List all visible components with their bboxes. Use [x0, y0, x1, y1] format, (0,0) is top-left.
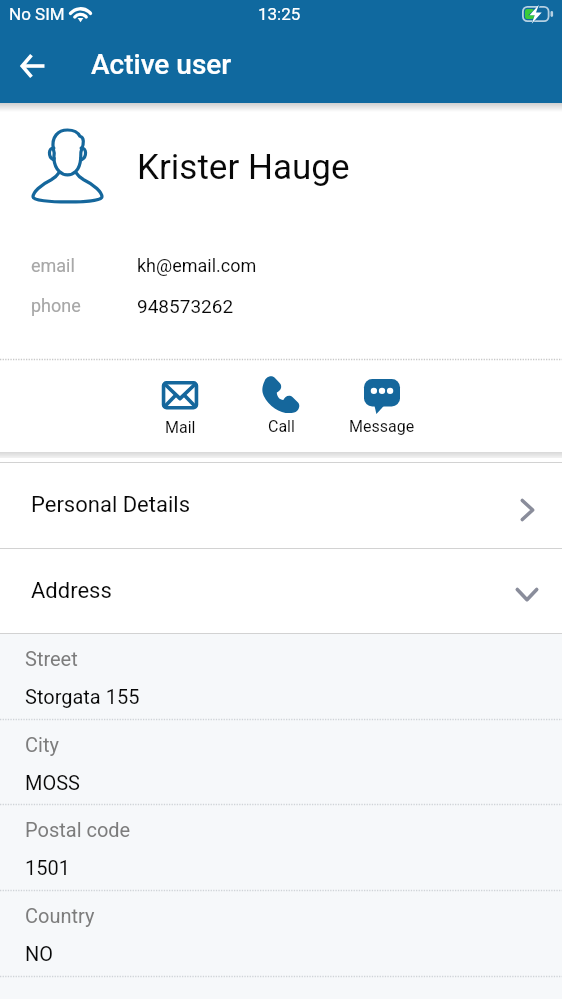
staticText: MOSS — [25, 771, 80, 794]
button[interactable]: Postal code — [0, 805, 562, 891]
staticText: kh@email.com — [137, 255, 257, 276]
button[interactable]: Call — [236, 357, 326, 439]
staticText: No SIM — [9, 4, 65, 24]
staticText: phone — [31, 295, 81, 316]
button[interactable]: Street — [0, 634, 562, 720]
staticText: Active user — [91, 48, 232, 81]
staticText: 13:25 — [258, 4, 301, 24]
staticText: Address — [31, 578, 112, 604]
button[interactable]: Country — [0, 891, 562, 977]
staticText: Mail — [165, 418, 196, 437]
staticText: NO — [25, 942, 54, 965]
staticText: Country — [25, 904, 95, 927]
staticText: City — [25, 733, 59, 756]
button[interactable]: Address — [0, 549, 562, 634]
button[interactable]: Back — [0, 34, 72, 103]
staticText: Street — [25, 647, 78, 670]
staticText: 1501 — [25, 856, 70, 879]
staticText: 948573262 — [137, 295, 234, 317]
staticText: Krister Hauge — [137, 147, 350, 188]
staticText: Postal code — [25, 818, 131, 841]
staticText: Message — [349, 417, 415, 436]
button[interactable]: City — [0, 720, 562, 805]
button[interactable]: Personal Details — [0, 463, 562, 548]
button[interactable]: Message — [337, 357, 427, 439]
staticText: Call — [268, 417, 295, 436]
staticText: Personal Details — [31, 492, 191, 518]
button[interactable]: Mail — [135, 358, 225, 440]
staticText: Storgata 155 — [25, 685, 140, 708]
staticText: email — [31, 255, 75, 276]
